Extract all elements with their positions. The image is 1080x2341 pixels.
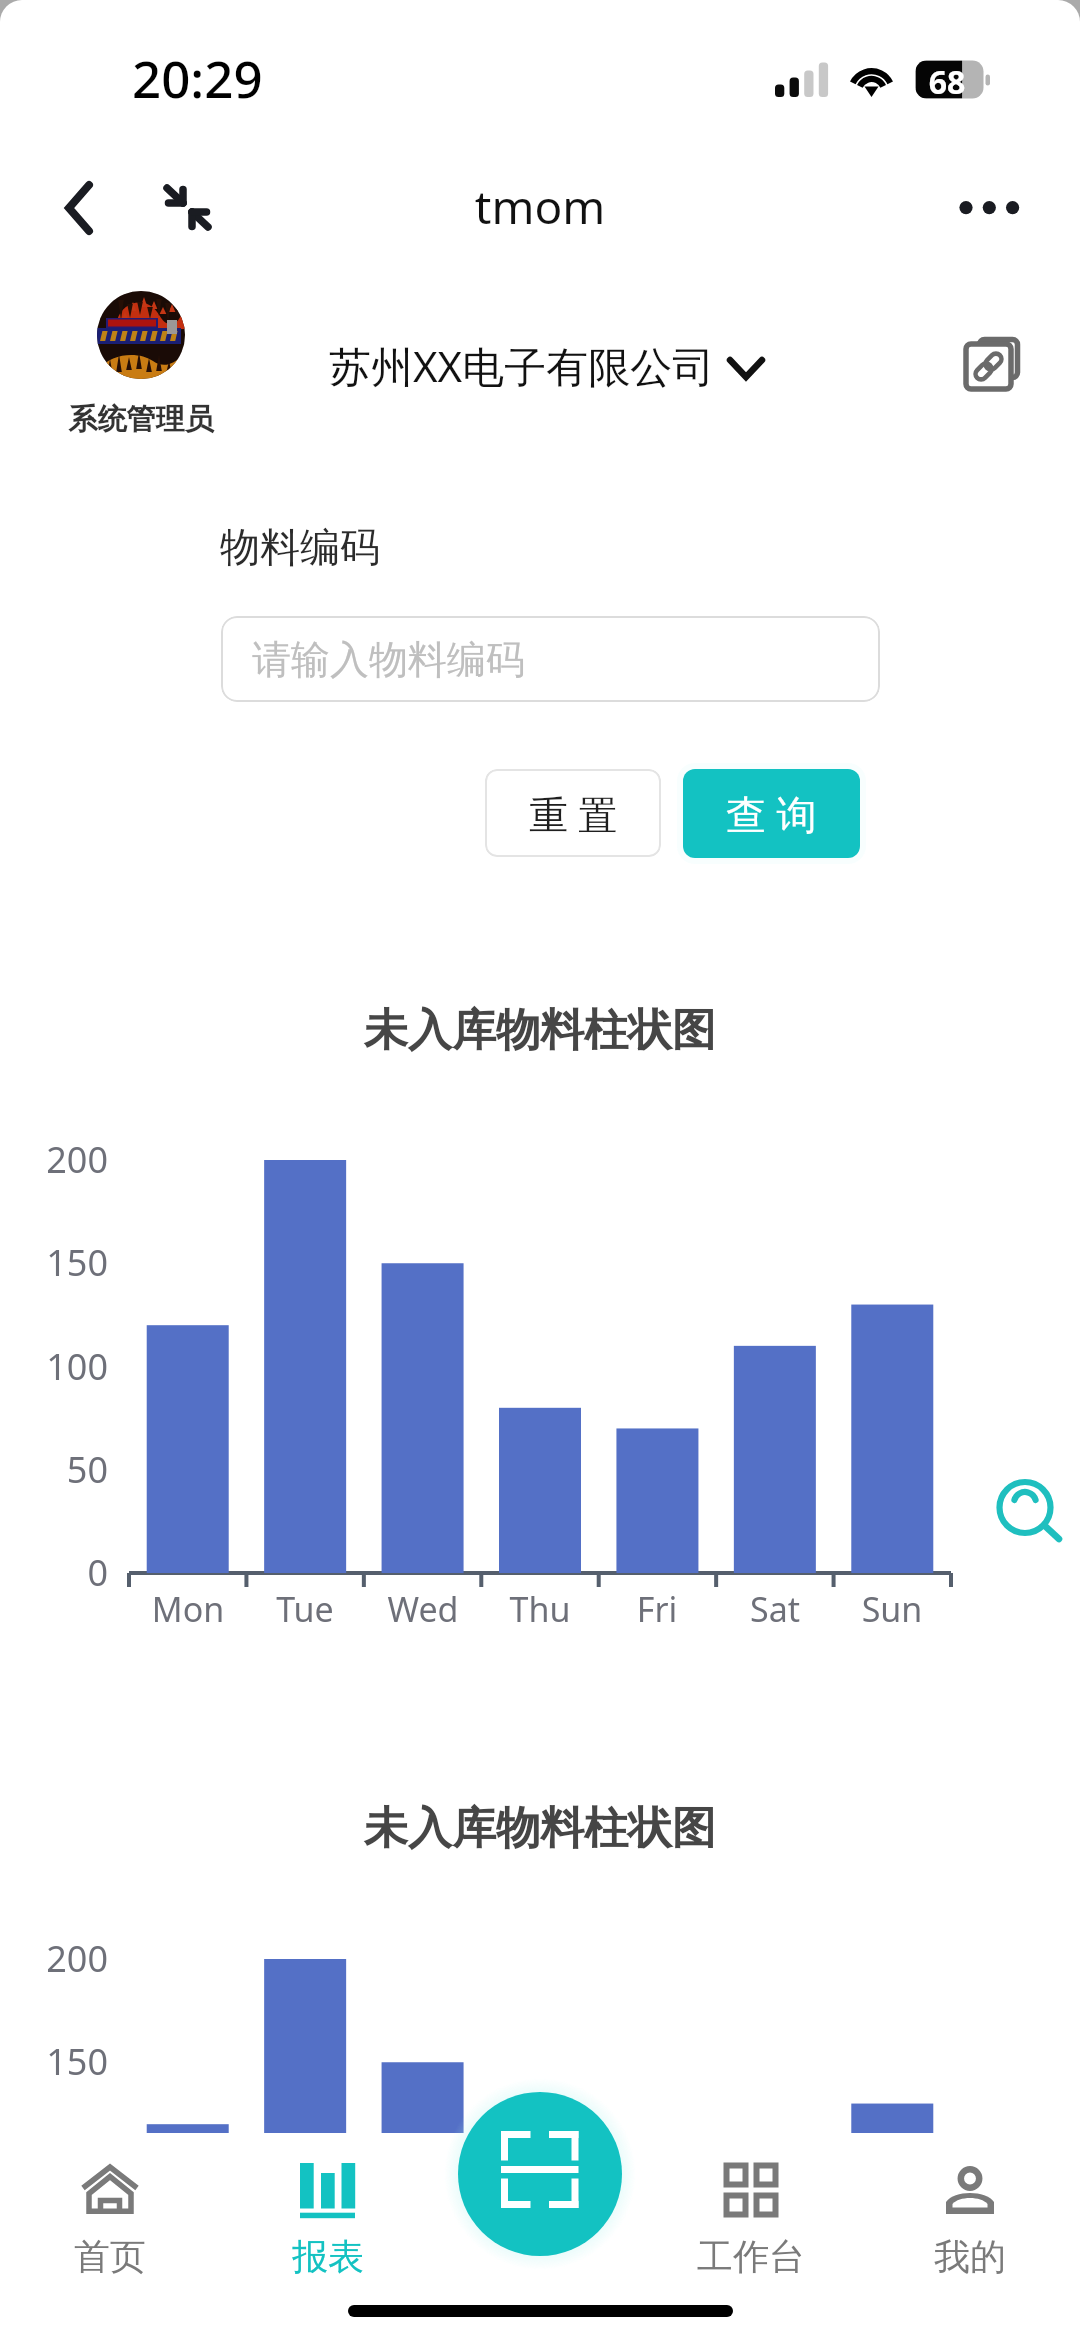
button[interactable]: 我的 [862, 2150, 1078, 2290]
button[interactable]: 查 询 [683, 769, 860, 858]
button[interactable]: Copy link [960, 330, 1032, 402]
staticText: 未入库物料柱状图 [0, 1801, 1080, 1856]
staticText: Sat [705, 1586, 845, 1632]
staticText: 请输入物料编码 [252, 635, 525, 684]
staticText: 物料编码 [220, 522, 380, 572]
button[interactable]: 报表 [220, 2150, 436, 2290]
button[interactable]: More options [930, 168, 1040, 248]
staticText: 工作台 [643, 2234, 859, 2279]
staticText: 报表 [220, 2234, 436, 2279]
button[interactable]: 工作台 [643, 2150, 859, 2290]
staticText: Thu [470, 1586, 610, 1632]
button[interactable]: 请输入物料编码 [221, 616, 880, 702]
staticText: Tue [235, 1586, 375, 1632]
button[interactable]: 重 置 [485, 769, 661, 857]
staticText: 100 [0, 1342, 108, 1391]
staticText: 系统管理员 [21, 401, 261, 438]
staticText: 苏州XX电子有限公司 [329, 337, 715, 394]
staticText: tmom [0, 175, 1080, 238]
staticText: 未入库物料柱状图 [0, 1003, 1080, 1058]
staticText: 50 [0, 1445, 108, 1494]
staticText: 重 置 [529, 787, 618, 840]
staticText: Wed [353, 1586, 493, 1632]
staticText: Sun [822, 1586, 962, 1632]
staticText: 首页 [2, 2234, 218, 2279]
button[interactable]: 苏州XX电子有限公司 [329, 337, 768, 394]
staticText: Fri [587, 1586, 727, 1632]
staticText: 68 [913, 60, 981, 104]
button[interactable]: 首页 [2, 2150, 218, 2290]
staticText: Mon [118, 1586, 258, 1632]
staticText: 150 [0, 2037, 108, 2086]
staticText: 200 [0, 1934, 108, 1983]
staticText: 150 [0, 1238, 108, 1287]
button[interactable]: Back [40, 165, 130, 250]
staticText: 20:29 [132, 43, 263, 112]
button[interactable]: Scan [458, 2092, 622, 2256]
button[interactable]: Zoom chart [990, 1472, 1066, 1548]
button[interactable]: Minimize [155, 175, 225, 245]
button[interactable]: Profile [97, 291, 185, 379]
staticText: 我的 [862, 2234, 1078, 2279]
staticText: 200 [0, 1135, 108, 1184]
staticText: 0 [0, 1548, 108, 1597]
staticText: 查 询 [726, 786, 817, 841]
